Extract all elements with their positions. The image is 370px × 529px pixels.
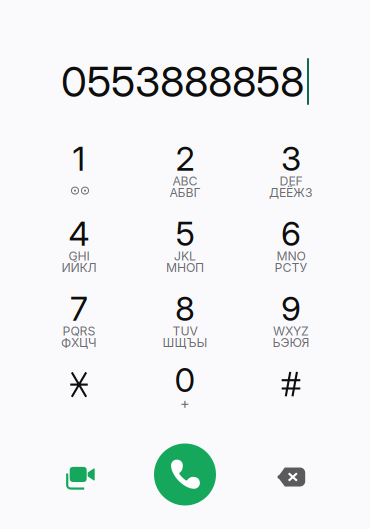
staticText: ДЕЁЖЗ	[269, 185, 313, 200]
button[interactable]: 9	[238, 294, 344, 369]
button[interactable]: Video call	[26, 443, 132, 506]
button[interactable]: 0	[132, 367, 238, 412]
staticText: 4	[68, 213, 89, 254]
staticText: JKL	[174, 249, 196, 263]
button[interactable]: 8	[132, 294, 238, 369]
staticText: МНОП	[166, 260, 204, 275]
staticText: ЬЭЮЯ	[272, 335, 309, 350]
staticText: ИЙКЛ	[61, 260, 96, 275]
button[interactable]: 7	[26, 294, 132, 369]
staticText: 2	[175, 138, 194, 179]
staticText: 0553888858	[61, 56, 304, 107]
button[interactable]: 2	[132, 144, 238, 219]
staticText: 8	[175, 288, 195, 329]
staticText: 6	[281, 213, 301, 254]
staticText: MNO	[276, 249, 305, 263]
button[interactable]: 5	[132, 219, 238, 294]
staticText: GHI	[68, 249, 89, 263]
staticText: ШЩЪЫ	[162, 335, 207, 350]
staticText: ФХЦЧ	[61, 335, 97, 350]
button[interactable]: Delete	[238, 443, 344, 506]
button[interactable]: 6	[238, 219, 344, 294]
staticText: 9	[281, 288, 301, 329]
button[interactable]	[26, 367, 132, 412]
button[interactable]: Call	[132, 443, 238, 506]
staticText: PQRS	[62, 324, 95, 338]
staticText: TUV	[172, 324, 197, 338]
staticText: АБВГ	[169, 185, 200, 200]
staticText: 1	[72, 138, 85, 179]
staticText: DEF	[279, 174, 302, 188]
button[interactable]: 4	[26, 219, 132, 294]
button[interactable]: 1	[26, 144, 132, 219]
staticText: РСТУ	[274, 260, 307, 275]
staticText: 3	[281, 138, 301, 179]
staticText: 5	[175, 213, 194, 254]
button[interactable]	[238, 367, 344, 412]
staticText: 0	[174, 360, 195, 400]
staticText: +	[180, 394, 190, 412]
staticText: 7	[70, 288, 88, 329]
button[interactable]: 3	[238, 144, 344, 219]
staticText: WXYZ	[273, 324, 309, 338]
staticText: ABC	[172, 174, 197, 188]
